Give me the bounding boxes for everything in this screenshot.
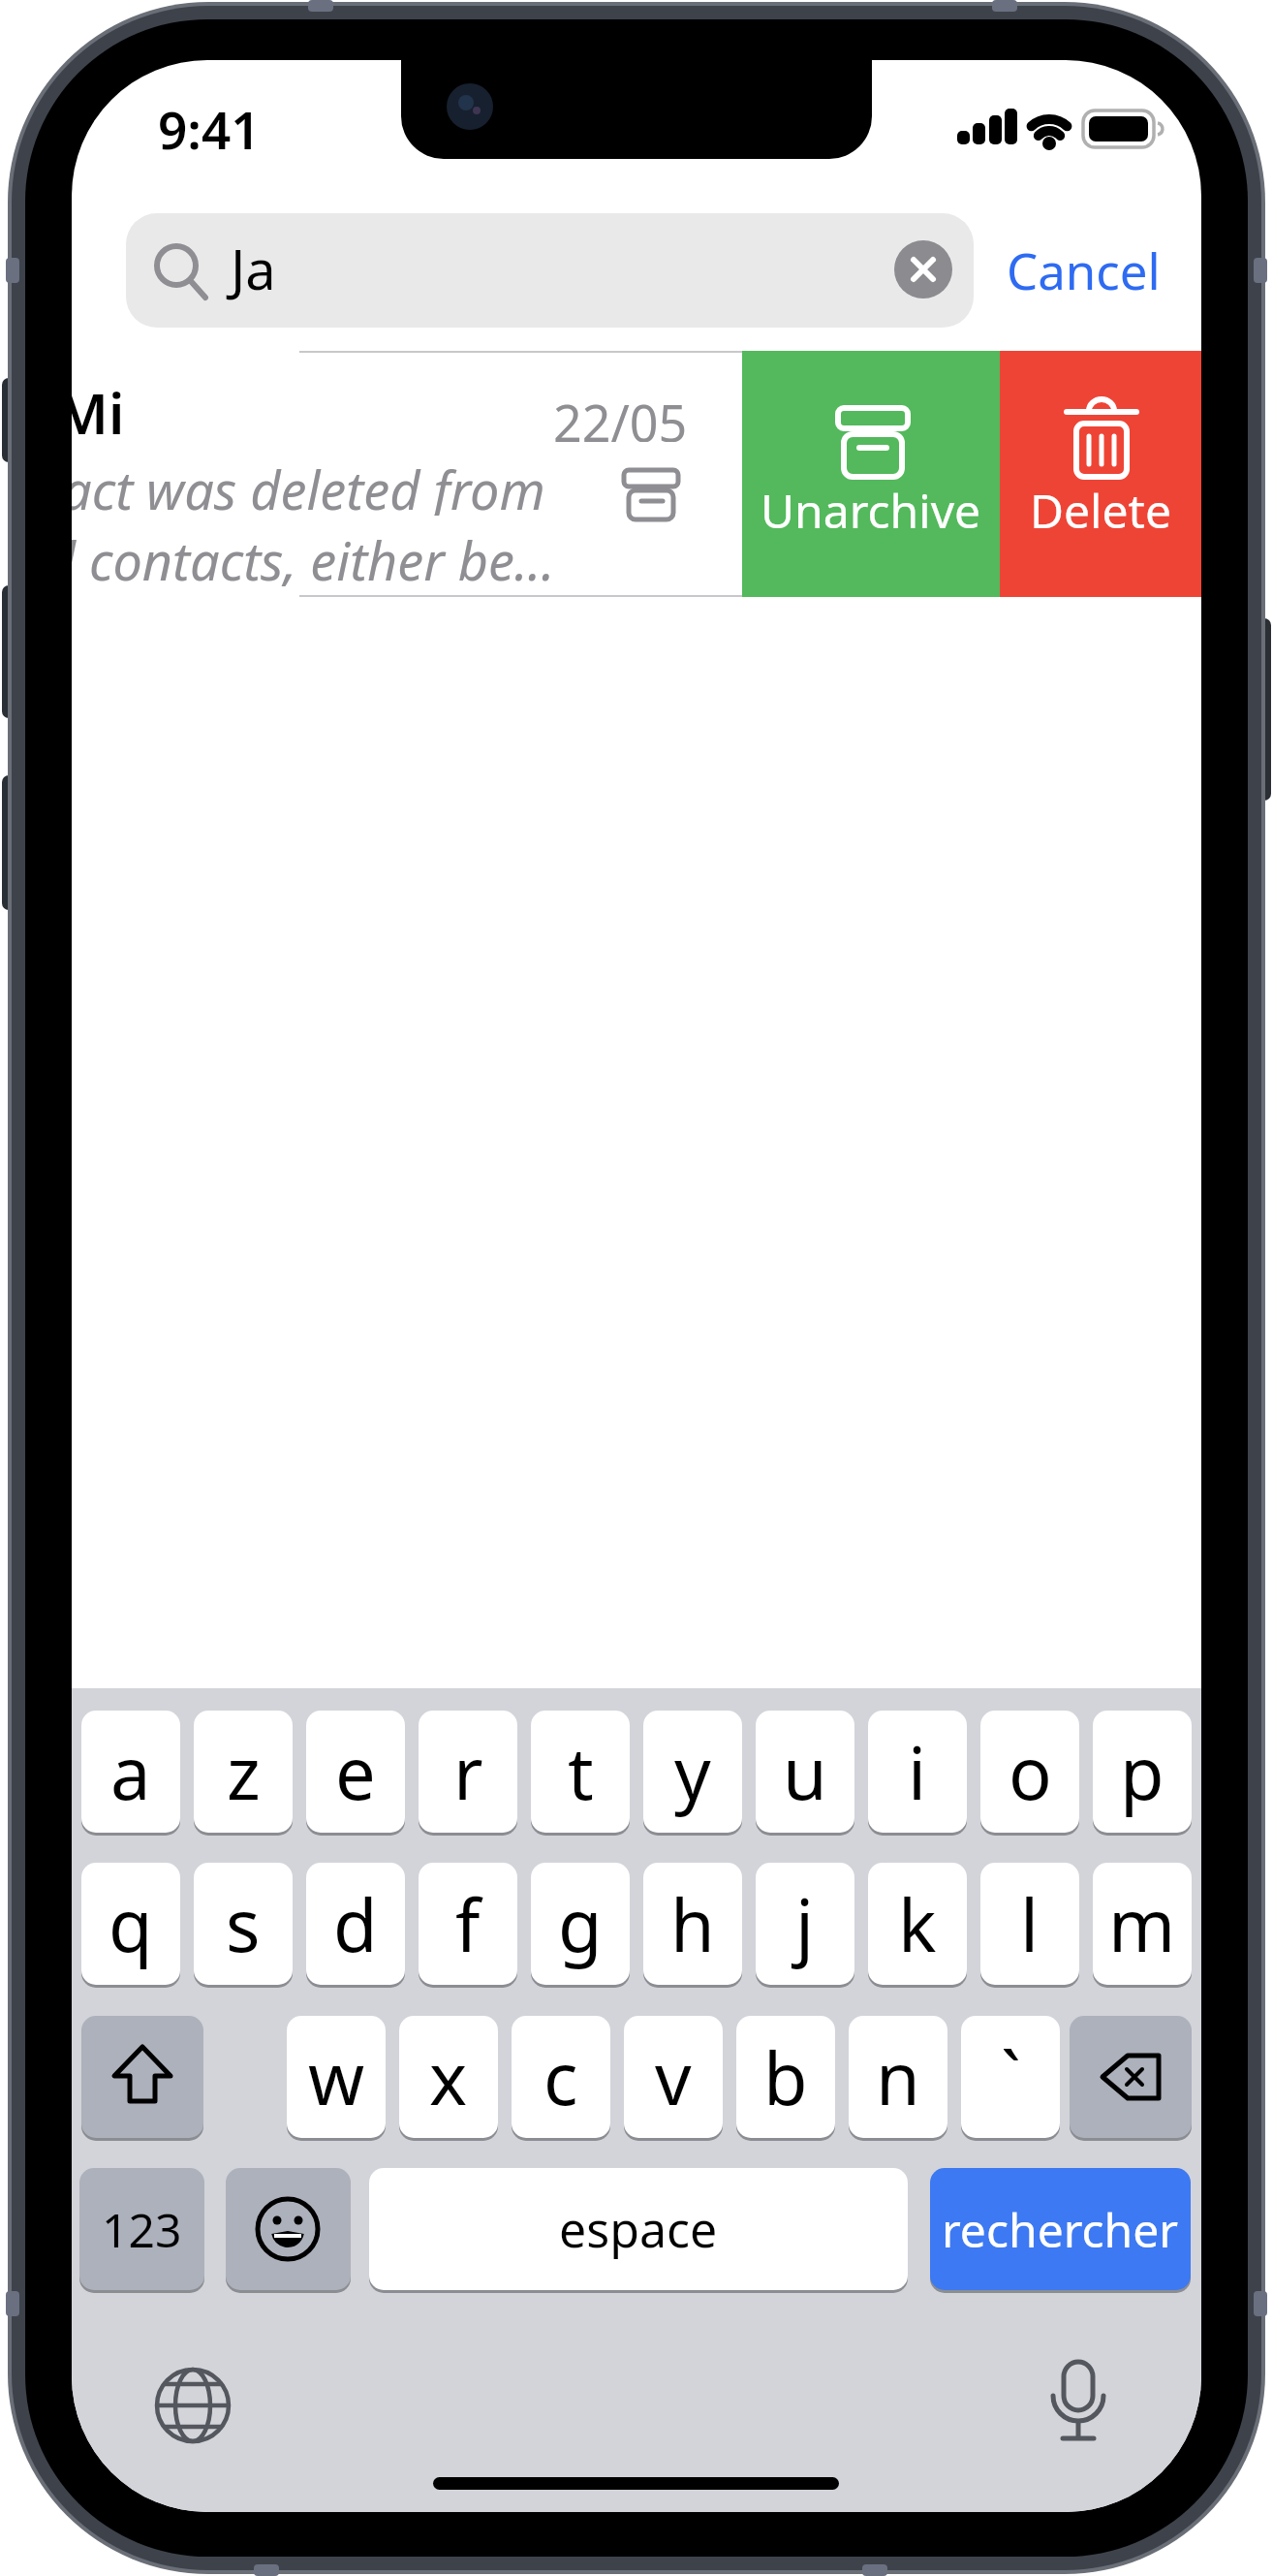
button[interactable]: i [868, 1711, 967, 1833]
button[interactable]: d [306, 1863, 405, 1985]
button[interactable]: v [624, 2016, 723, 2138]
staticText: b [763, 2028, 808, 2126]
staticText: z [227, 1723, 261, 1821]
staticText: w [308, 2028, 365, 2126]
button[interactable] [1070, 2016, 1192, 2138]
staticText: o [1009, 1723, 1052, 1821]
button[interactable]: q [81, 1863, 180, 1985]
staticText: Delete [1030, 479, 1171, 537]
staticText: t [568, 1723, 594, 1821]
button[interactable]: y [643, 1711, 742, 1833]
staticText: 22/05 [553, 388, 688, 442]
staticText: l contacts, either be... [72, 524, 555, 586]
staticText: ` [1001, 2028, 1021, 2126]
staticText: Unarchive [761, 479, 981, 537]
button[interactable]: a [81, 1711, 180, 1833]
button[interactable]: s [194, 1863, 293, 1985]
staticText: 9:41 [158, 94, 261, 164]
staticText: l [1020, 1875, 1040, 1973]
button[interactable]: x [399, 2016, 498, 2138]
button[interactable]: f [419, 1863, 517, 1985]
staticText: m [1108, 1875, 1176, 1973]
staticText: v [655, 2028, 692, 2126]
button[interactable] [742, 351, 1000, 597]
button[interactable] [81, 2016, 203, 2138]
button[interactable]: j [756, 1863, 854, 1985]
button[interactable] [126, 213, 974, 328]
button[interactable]: rechercher [930, 2168, 1191, 2290]
button[interactable]: o [980, 1711, 1079, 1833]
button[interactable]: u [756, 1711, 854, 1833]
button[interactable]: p [1093, 1711, 1192, 1833]
button[interactable]: k [868, 1863, 967, 1985]
staticText: g [558, 1875, 603, 1973]
button[interactable]: r [419, 1711, 517, 1833]
staticText: p [1120, 1723, 1164, 1821]
staticText: s [226, 1875, 261, 1973]
staticText: 123 [102, 2198, 182, 2261]
staticText: Mi [72, 374, 125, 444]
staticText: h [670, 1875, 715, 1973]
staticText: r [453, 1723, 483, 1821]
button[interactable] [226, 2168, 351, 2290]
staticText: d [333, 1875, 378, 1973]
button[interactable]: 123 [79, 2168, 204, 2290]
staticText: c [543, 2028, 578, 2126]
button[interactable]: c [512, 2016, 610, 2138]
button[interactable] [72, 351, 742, 597]
staticText: q [109, 1875, 153, 1973]
staticText: x [429, 2028, 468, 2126]
button[interactable]: g [531, 1863, 630, 1985]
staticText: a [110, 1723, 151, 1821]
staticText: j [795, 1875, 815, 1973]
button[interactable]: ` [961, 2016, 1060, 2138]
button[interactable]: n [849, 2016, 947, 2138]
button[interactable]: l [980, 1863, 1079, 1985]
button[interactable]: e [306, 1711, 405, 1833]
staticText: act was deleted from [72, 454, 545, 516]
staticText: n [876, 2028, 920, 2126]
button[interactable]: m [1093, 1863, 1192, 1985]
button[interactable]: z [194, 1711, 293, 1833]
staticText: Ja [231, 232, 276, 305]
staticText: u [783, 1723, 827, 1821]
button[interactable]: espace [369, 2168, 908, 2290]
staticText: rechercher [942, 2198, 1179, 2261]
staticText: f [455, 1875, 481, 1973]
staticText: y [674, 1723, 711, 1821]
button[interactable]: t [531, 1711, 630, 1833]
staticText: e [335, 1723, 376, 1821]
staticText: Cancel [1007, 236, 1161, 303]
button[interactable]: w [287, 2016, 386, 2138]
button[interactable]: b [736, 2016, 835, 2138]
button[interactable]: h [643, 1863, 742, 1985]
button[interactable]: Cancel [998, 231, 1168, 308]
staticText: k [898, 1875, 937, 1973]
button[interactable] [1000, 351, 1201, 597]
staticText: i [908, 1723, 927, 1821]
staticText: espace [559, 2196, 718, 2262]
